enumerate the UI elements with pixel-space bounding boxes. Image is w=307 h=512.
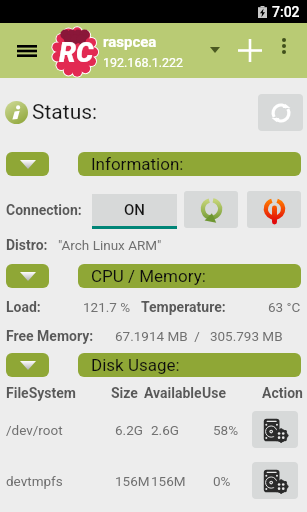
staticText: Connection:	[6, 202, 82, 218]
staticText: Information:	[91, 154, 184, 174]
button[interactable]: Shutdown	[247, 191, 301, 228]
button[interactable]: Toggle section	[6, 152, 49, 176]
staticText: Use	[202, 385, 226, 401]
staticText: "Arch Linux ARM"	[58, 237, 162, 253]
staticText: 2.6G	[151, 422, 179, 438]
button[interactable]: Select device	[201, 36, 229, 64]
button[interactable]: More options	[270, 32, 298, 60]
button[interactable]: Add device	[232, 32, 268, 68]
staticText: 7:02	[272, 4, 300, 20]
staticText: Available	[144, 385, 202, 401]
staticText: 156M	[115, 473, 150, 489]
button[interactable]: Toggle section	[6, 353, 49, 377]
staticText: 67.1914 MB / 305.793 MB	[115, 328, 283, 344]
button[interactable]: Disk actions	[252, 411, 298, 448]
staticText: Load:	[6, 299, 83, 315]
staticText: 63 °C	[268, 299, 301, 315]
staticText: 121.7 %	[83, 299, 141, 315]
staticText: Action	[262, 385, 303, 401]
button[interactable]: Disk actions	[252, 462, 298, 499]
staticText: Size	[111, 385, 138, 401]
staticText: ON	[124, 201, 145, 219]
button[interactable]: Toggle section	[6, 264, 49, 288]
staticText: RC	[59, 37, 94, 69]
button[interactable]: ON	[92, 194, 177, 229]
staticText: /dev/root	[6, 422, 63, 438]
staticText: devtmpfs	[6, 473, 63, 489]
staticText: 6.2G	[115, 422, 143, 438]
staticText: 58%	[213, 422, 239, 438]
staticText: Distro:	[6, 237, 48, 253]
button[interactable]: Reboot	[184, 191, 238, 228]
staticText: 0%	[213, 473, 231, 489]
staticText: Temperature:	[141, 299, 226, 315]
staticText: CPU / Memory:	[91, 266, 206, 286]
staticText: Status:	[32, 100, 98, 125]
button[interactable]: Navigation menu	[9, 33, 45, 69]
staticText: FileSystem	[6, 385, 76, 401]
button[interactable]: Refresh	[258, 94, 303, 131]
staticText: Free Memory:	[6, 328, 115, 344]
staticText: 192.168.1.222	[103, 55, 184, 70]
staticText: 156M	[151, 473, 186, 489]
staticText: Disk Usage:	[91, 355, 180, 375]
staticText: raspcea	[103, 33, 157, 51]
